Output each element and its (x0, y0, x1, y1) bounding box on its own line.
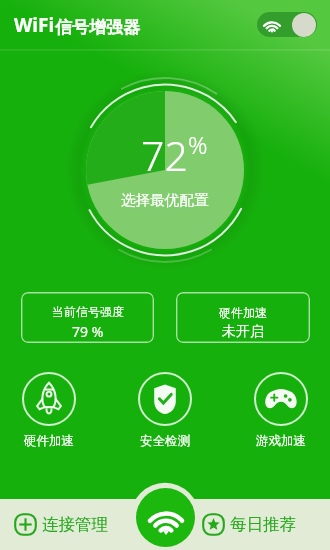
staticText: 当前信号强度 (52, 304, 124, 319)
staticText: 安全检测 (140, 433, 190, 449)
button[interactable]: WiFi (0, 0, 330, 50)
staticText: 79 % (72, 322, 104, 341)
button[interactable]: 硬件加速 (176, 292, 310, 343)
button[interactable]: 每日推荐 (202, 513, 296, 536)
staticText: % (188, 128, 208, 161)
staticText: 硬件加速 (219, 305, 267, 320)
button[interactable]: Boost WiFi (136, 488, 195, 547)
button[interactable]: WiFi toggle (257, 12, 317, 37)
button[interactable]: 硬件加速 (0, 372, 99, 449)
staticText: 72 (141, 127, 188, 183)
staticText: 硬件加速 (24, 433, 74, 449)
button[interactable]: 安全检测 (115, 372, 215, 449)
staticText: 信号增强器 (55, 17, 140, 38)
staticText: 连接管理 (42, 514, 108, 535)
staticText: 每日推荐 (230, 514, 296, 535)
button[interactable]: 游戏加速 (231, 372, 330, 449)
staticText: WiFi (14, 12, 55, 38)
staticText: 游戏加速 (256, 433, 306, 449)
button[interactable]: 连接管理 (14, 513, 108, 536)
staticText: 选择最优配置 (121, 191, 209, 209)
staticText: 未开启 (222, 323, 264, 341)
button[interactable]: 当前信号强度 (21, 292, 154, 343)
